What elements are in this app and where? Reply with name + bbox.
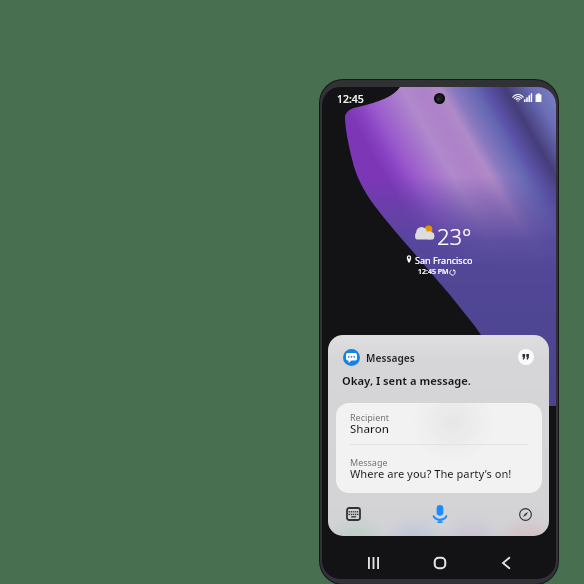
button[interactable]: Microphone xyxy=(428,503,452,525)
staticText: Messages xyxy=(366,351,415,365)
button[interactable]: Recipient xyxy=(336,403,542,493)
staticText: Message xyxy=(350,456,388,468)
staticText: Recipient xyxy=(350,411,390,423)
button[interactable]: Voice input hint xyxy=(518,349,534,365)
staticText: 12:45 PM xyxy=(418,267,449,277)
button[interactable]: Back xyxy=(491,550,521,576)
button[interactable]: Recent apps xyxy=(358,550,388,576)
button[interactable]: Messages xyxy=(328,335,549,536)
button[interactable]: Explore xyxy=(514,503,537,525)
staticText: Sharon xyxy=(350,421,389,437)
button[interactable]: Home xyxy=(425,550,455,576)
button[interactable]: Keyboard xyxy=(341,503,365,525)
staticText: Where are you? The party’s on! xyxy=(350,466,512,481)
staticText: Okay, I sent a message. xyxy=(342,373,471,388)
staticText: San Francisco xyxy=(415,254,473,266)
staticText: 23° xyxy=(437,221,472,251)
staticText: 12:45 xyxy=(337,92,364,106)
